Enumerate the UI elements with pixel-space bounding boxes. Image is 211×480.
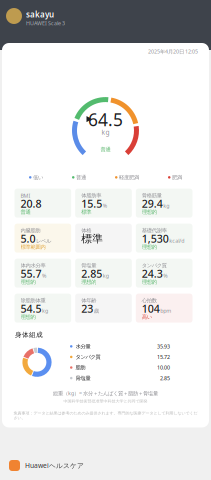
staticText: % — [163, 272, 167, 279]
staticText: 普通 — [76, 174, 86, 181]
staticText: 理想的 — [142, 209, 157, 215]
staticText: 体格 — [81, 227, 91, 234]
staticText: 肥満 — [172, 174, 182, 181]
staticText: レベル — [36, 238, 51, 244]
staticText: 標準 — [81, 209, 91, 215]
staticText: sakayu — [26, 9, 54, 20]
staticText: 中国科学技術部批准華中科技大学と共同で開発 — [63, 399, 147, 404]
staticText: 普通 — [100, 146, 110, 153]
staticText: 総重（kg）= 水分＋たんぱく質＋脂肪＋骨塩量 — [53, 390, 158, 397]
staticText: 2025年4月20日 12:05 — [148, 48, 198, 55]
staticText: 標準 — [81, 232, 103, 245]
staticText: タンパク質 — [75, 354, 100, 360]
staticText: 高い — [142, 314, 152, 320]
staticText: kcal/d — [169, 237, 184, 244]
staticText: kg — [103, 272, 109, 279]
staticText: 基礎代謝率 — [142, 227, 167, 234]
staticText: 15.5 — [81, 197, 102, 211]
staticText: kg — [101, 128, 109, 137]
staticText: 23 — [81, 302, 93, 316]
staticText: 体年齢 — [81, 297, 96, 304]
staticText: 理想的 — [20, 314, 35, 320]
staticText: bpm — [160, 307, 171, 314]
staticText: 35.93 — [157, 343, 170, 350]
staticText: 除脂肪体重 — [20, 297, 45, 304]
staticText: 骨塩量 — [81, 262, 96, 269]
staticText: HUAWEI Scale 3 — [26, 20, 65, 27]
staticText: 脂肪 — [75, 364, 85, 371]
staticText: 24.3 — [142, 267, 163, 281]
staticText: 理想的 — [142, 279, 157, 285]
staticText: 20.8 — [20, 197, 41, 211]
staticText: 軽度肥満 — [119, 174, 139, 181]
staticText: 体内水分率 — [20, 262, 45, 269]
staticText: kg — [42, 307, 48, 314]
staticText: 54.5 — [20, 302, 41, 316]
staticText: % — [103, 202, 107, 209]
staticText: 骨格筋量 — [142, 192, 162, 199]
staticText: 5.0 — [20, 232, 35, 246]
staticText: Huaweiヘルスケア — [25, 461, 84, 470]
staticText: 歳 — [94, 308, 99, 314]
staticText: BMI — [20, 192, 30, 199]
staticText: 理想的 — [81, 279, 96, 285]
staticText: 身体組成 — [15, 331, 43, 339]
staticText: 15.72 — [157, 353, 170, 360]
staticText: 低い — [33, 174, 43, 181]
staticText: 10.00 — [157, 364, 170, 371]
staticText: 1,530 — [142, 232, 169, 246]
staticText: 水分量 — [75, 343, 90, 350]
staticText: タンパク質 — [142, 262, 167, 269]
staticText: 理想的 — [20, 279, 35, 285]
staticText: 免責事項：データと結果は参考のためのみ提供されます。専門的な医療データとして利用… — [13, 411, 197, 420]
staticText: 心拍数 — [142, 297, 157, 304]
staticText: 普通 — [20, 209, 30, 215]
staticText: 64.5 — [88, 108, 123, 131]
staticText: 体脂肪率 — [81, 192, 101, 199]
staticText: 理想的 — [142, 244, 157, 250]
staticText: 標準範囲内 — [20, 244, 45, 250]
staticText: 骨塩量 — [75, 375, 90, 381]
staticText: 104 — [142, 302, 160, 316]
staticText: % — [42, 272, 46, 279]
staticText: 55.7 — [20, 267, 41, 281]
staticText: kg — [163, 202, 169, 209]
staticText: 29.4 — [142, 197, 163, 211]
staticText: 2.85 — [160, 375, 170, 382]
staticText: 内臓脂肪 — [20, 227, 40, 234]
staticText: 2.85 — [81, 267, 102, 281]
